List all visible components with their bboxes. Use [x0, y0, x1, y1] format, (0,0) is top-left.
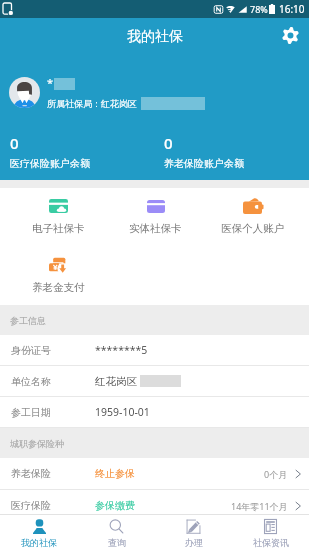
- staticText: 查询: [108, 537, 126, 548]
- button[interactable]: 社保资讯: [232, 515, 309, 550]
- button[interactable]: 我的社保: [0, 515, 78, 550]
- staticText: 养老保险: [11, 467, 51, 480]
- button[interactable]: 养老金支付: [10, 257, 107, 294]
- staticText: 医疗保险账户余额: [10, 157, 90, 170]
- button[interactable]: 单位名称: [0, 366, 309, 396]
- staticText: 养老保险账户余额: [164, 157, 244, 170]
- staticText: 办理: [185, 537, 203, 548]
- staticText: 医疗保险: [11, 499, 51, 512]
- staticText: 参工日期: [11, 406, 51, 419]
- staticText: 电子社保卡: [32, 222, 85, 235]
- staticText: *: [47, 75, 54, 90]
- button[interactable]: 身份证号: [0, 335, 309, 365]
- button[interactable]: 办理: [155, 515, 232, 550]
- staticText: 78%: [250, 3, 268, 15]
- button[interactable]: Settings: [276, 21, 304, 49]
- staticText: ********5: [95, 343, 148, 357]
- staticText: 我的社保: [127, 28, 183, 46]
- staticText: 实体社保卡: [129, 222, 182, 235]
- button[interactable]: 医保个人账户: [204, 198, 301, 235]
- staticText: 1959-10-01: [95, 405, 150, 419]
- staticText: 0: [164, 133, 173, 153]
- staticText: 社保资讯: [253, 537, 289, 548]
- staticText: 红花岗区: [95, 375, 137, 388]
- staticText: 所属社保局：红花岗区: [47, 98, 137, 109]
- button[interactable]: 实体社保卡: [107, 198, 204, 235]
- staticText: 医保个人账户: [221, 222, 284, 235]
- staticText: 0: [10, 133, 19, 153]
- staticText: 14年零11个月: [231, 500, 288, 512]
- button[interactable]: 电子社保卡: [10, 198, 107, 235]
- button[interactable]: 参工日期: [0, 397, 309, 427]
- staticText: 终止参保: [95, 467, 135, 480]
- staticText: 身份证号: [11, 344, 51, 357]
- staticText: 参工信息: [10, 315, 46, 326]
- staticText: 我的社保: [21, 537, 57, 548]
- staticText: 0个月: [264, 468, 288, 480]
- button[interactable]: 查询: [78, 515, 155, 550]
- staticText: 参保缴费: [95, 499, 135, 512]
- staticText: 养老金支付: [32, 281, 85, 294]
- button[interactable]: 养老保险: [0, 458, 309, 489]
- staticText: 单位名称: [11, 375, 51, 388]
- button[interactable]: 医疗保险: [0, 490, 309, 521]
- staticText: 16:10: [279, 2, 305, 16]
- staticText: 城职参保险种: [10, 438, 64, 449]
